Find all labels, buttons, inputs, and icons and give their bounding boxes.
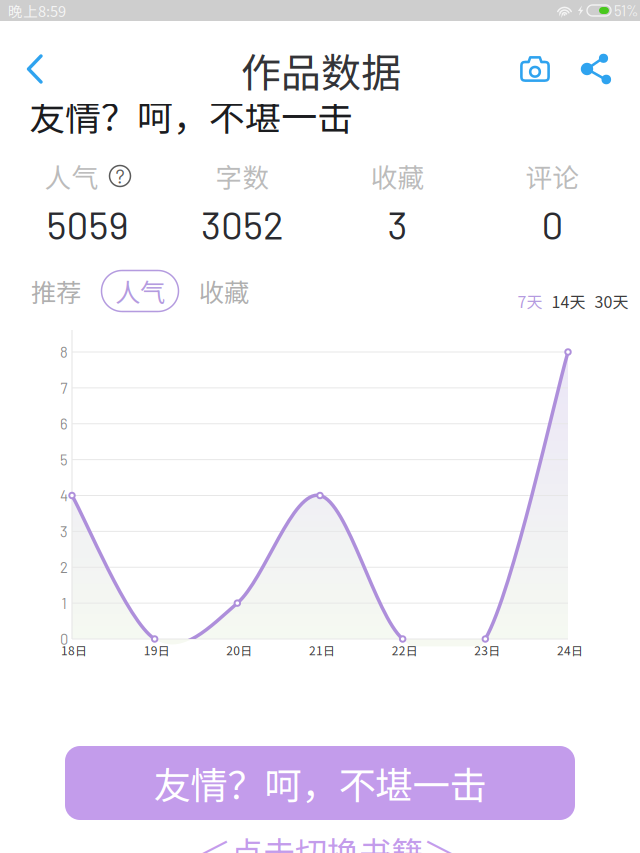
button[interactable]: Share: [572, 43, 620, 95]
button[interactable]: 人气: [101, 270, 178, 311]
staticText: ＜点击切换书籍＞: [199, 828, 455, 853]
staticText: 3: [387, 201, 407, 247]
staticText: 2: [60, 558, 68, 576]
staticText: 7: [60, 379, 67, 397]
button[interactable]: ＜点击切换书籍＞: [177, 835, 477, 853]
staticText: ?: [115, 163, 124, 187]
staticText: 作品数据: [241, 41, 401, 99]
staticText: 晚上8:59: [8, 0, 66, 21]
button[interactable]: 友情？呵，不堪一击: [65, 746, 575, 820]
staticText: 24日: [557, 641, 583, 659]
button[interactable]: 收藏: [190, 270, 258, 312]
staticText: 3: [60, 523, 68, 540]
button[interactable]: Back: [7, 37, 63, 101]
staticText: 评论: [525, 157, 579, 195]
button[interactable]: 14天: [551, 289, 585, 313]
staticText: 字数: [215, 157, 269, 195]
staticText: 51%: [614, 2, 638, 19]
staticText: 人气: [44, 157, 98, 195]
staticText: 0: [60, 630, 68, 648]
staticText: 人气: [115, 273, 165, 309]
staticText: 20日: [226, 641, 252, 659]
staticText: 5: [60, 451, 68, 468]
staticText: 0: [541, 201, 563, 247]
staticText: 19日: [144, 641, 170, 659]
staticText: 收藏: [370, 157, 424, 195]
staticText: 友情？呵，不堪一击: [29, 89, 353, 141]
button[interactable]: 30天: [594, 289, 628, 313]
staticText: 3052: [201, 201, 284, 247]
staticText: 1: [61, 594, 66, 612]
button[interactable]: 7天: [517, 289, 542, 313]
staticText: 6: [60, 415, 68, 432]
staticText: 4: [60, 487, 68, 504]
staticText: 18日: [61, 641, 87, 659]
staticText: 14天: [551, 289, 585, 313]
staticText: 友情？呵，不堪一击: [153, 756, 486, 810]
staticText: 22日: [392, 641, 418, 659]
staticText: 23日: [474, 641, 500, 659]
button[interactable]: Camera: [509, 43, 561, 95]
staticText: 21日: [309, 641, 335, 659]
staticText: 收藏: [199, 273, 249, 309]
staticText: 7天: [517, 289, 542, 313]
staticText: 推荐: [31, 273, 81, 309]
staticText: 8: [60, 343, 68, 361]
staticText: 5059: [46, 201, 128, 247]
staticText: 30天: [594, 289, 628, 313]
button[interactable]: 推荐: [22, 270, 90, 312]
